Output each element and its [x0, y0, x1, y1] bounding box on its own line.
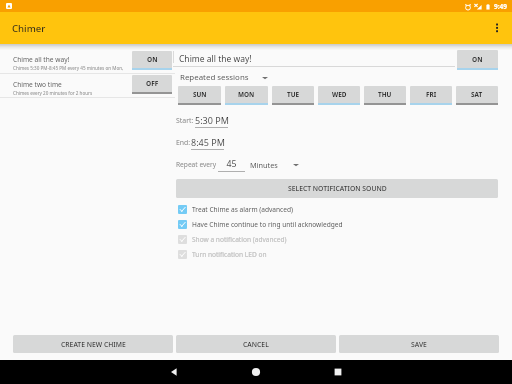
- staticText: Chimer: [12, 22, 46, 35]
- staticText: Chime two time: [13, 80, 62, 89]
- staticText: Chimes every 20 minutes for 2 hours: [13, 90, 93, 96]
- staticText: Chime all the way!: [179, 53, 252, 65]
- staticText: CANCEL: [243, 340, 269, 349]
- button[interactable]: WED: [318, 86, 360, 105]
- button[interactable]: Repeated sessions: [180, 72, 268, 83]
- staticText: MON: [238, 90, 255, 99]
- button[interactable]: End:: [176, 136, 224, 150]
- staticText: Chimes 5:30 PM-8:45 PM every 45 minutes …: [13, 65, 124, 71]
- button[interactable]: ON: [132, 51, 172, 70]
- staticText: WED: [332, 90, 347, 99]
- button[interactable]: SAVE: [339, 335, 499, 353]
- staticText: Repeated sessions: [180, 72, 249, 83]
- staticText: Show a notification (advanced): [192, 235, 287, 244]
- staticText: Turn notification LED on: [192, 250, 267, 259]
- button[interactable]: SUN: [178, 86, 221, 105]
- staticText: SAT: [471, 90, 483, 99]
- staticText: 9:49: [494, 2, 507, 11]
- button[interactable]: CANCEL: [176, 335, 336, 353]
- staticText: ON: [147, 55, 158, 64]
- button[interactable]: SAT: [456, 86, 498, 105]
- button[interactable]: Back: [133, 360, 215, 384]
- button[interactable]: Repeat every: [176, 158, 302, 172]
- button[interactable]: ON: [457, 50, 498, 70]
- button[interactable]: More options: [484, 12, 512, 44]
- staticText: SELECT NOTIFICATION SOUND: [288, 184, 387, 193]
- staticText: ON: [472, 55, 483, 64]
- button[interactable]: CREATE NEW CHIME: [13, 335, 173, 353]
- staticText: FRI: [426, 90, 437, 99]
- button[interactable]: THU: [364, 86, 406, 105]
- button[interactable]: FRI: [410, 86, 452, 105]
- button[interactable]: MON: [225, 86, 268, 105]
- button[interactable]: SELECT NOTIFICATION SOUND: [176, 179, 498, 198]
- button[interactable]: Have Chime continue to ring until acknow…: [178, 217, 498, 232]
- staticText: SAVE: [411, 340, 427, 349]
- staticText: Start:: [176, 116, 194, 125]
- button[interactable]: Recents: [297, 360, 379, 384]
- button[interactable]: Start:: [176, 114, 228, 128]
- staticText: 8:45 PM: [191, 136, 225, 148]
- button[interactable]: Home: [215, 360, 297, 384]
- staticText: End:: [176, 138, 191, 147]
- staticText: Chime all the way!: [13, 55, 70, 64]
- button[interactable]: OFF: [132, 75, 172, 94]
- staticText: 45: [218, 158, 245, 170]
- staticText: Minutes: [250, 160, 278, 170]
- button[interactable]: Turn notification LED on: [178, 247, 498, 262]
- staticText: Repeat every: [176, 160, 217, 169]
- staticText: THU: [378, 90, 392, 99]
- staticText: SUN: [193, 90, 207, 99]
- staticText: CREATE NEW CHIME: [61, 340, 126, 349]
- button[interactable]: Chime two time: [0, 75, 173, 100]
- button[interactable]: Chime all the way!: [0, 50, 173, 75]
- staticText: OFF: [146, 79, 159, 88]
- button[interactable]: Treat Chime as alarm (advanced): [178, 202, 498, 217]
- staticText: Have Chime continue to ring until acknow…: [192, 220, 343, 229]
- button[interactable]: Show a notification (advanced): [178, 232, 498, 247]
- staticText: Treat Chime as alarm (advanced): [192, 205, 294, 214]
- staticText: TUE: [287, 90, 300, 99]
- staticText: 5:30 PM: [195, 114, 229, 126]
- button[interactable]: TUE: [272, 86, 314, 105]
